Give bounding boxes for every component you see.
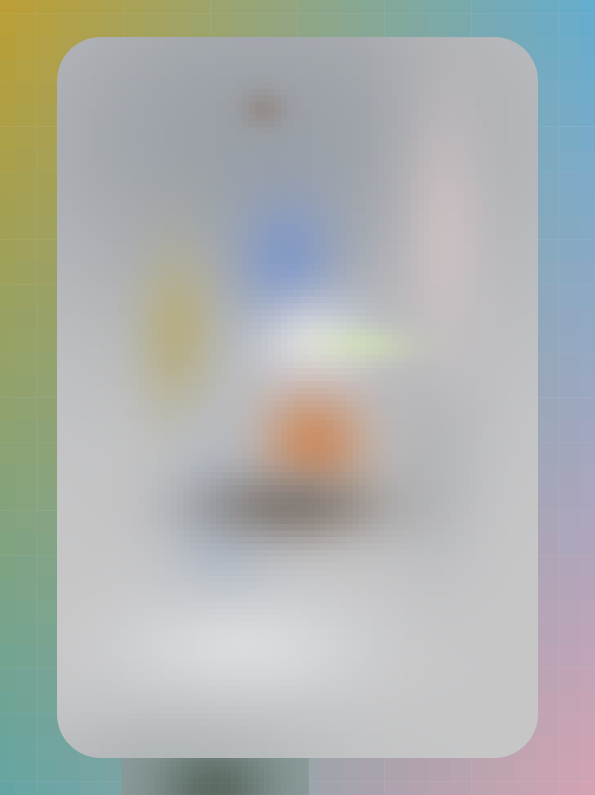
- button[interactable]: Tab: [418, 706, 538, 758]
- button[interactable]: Share: [482, 37, 538, 81]
- button[interactable]: Favourite: [194, 610, 286, 662]
- button[interactable]: Info: [308, 610, 400, 662]
- button[interactable]: Tab: [57, 706, 177, 758]
- button[interactable]: Tab: [177, 706, 297, 758]
- button[interactable]: Back: [57, 37, 113, 81]
